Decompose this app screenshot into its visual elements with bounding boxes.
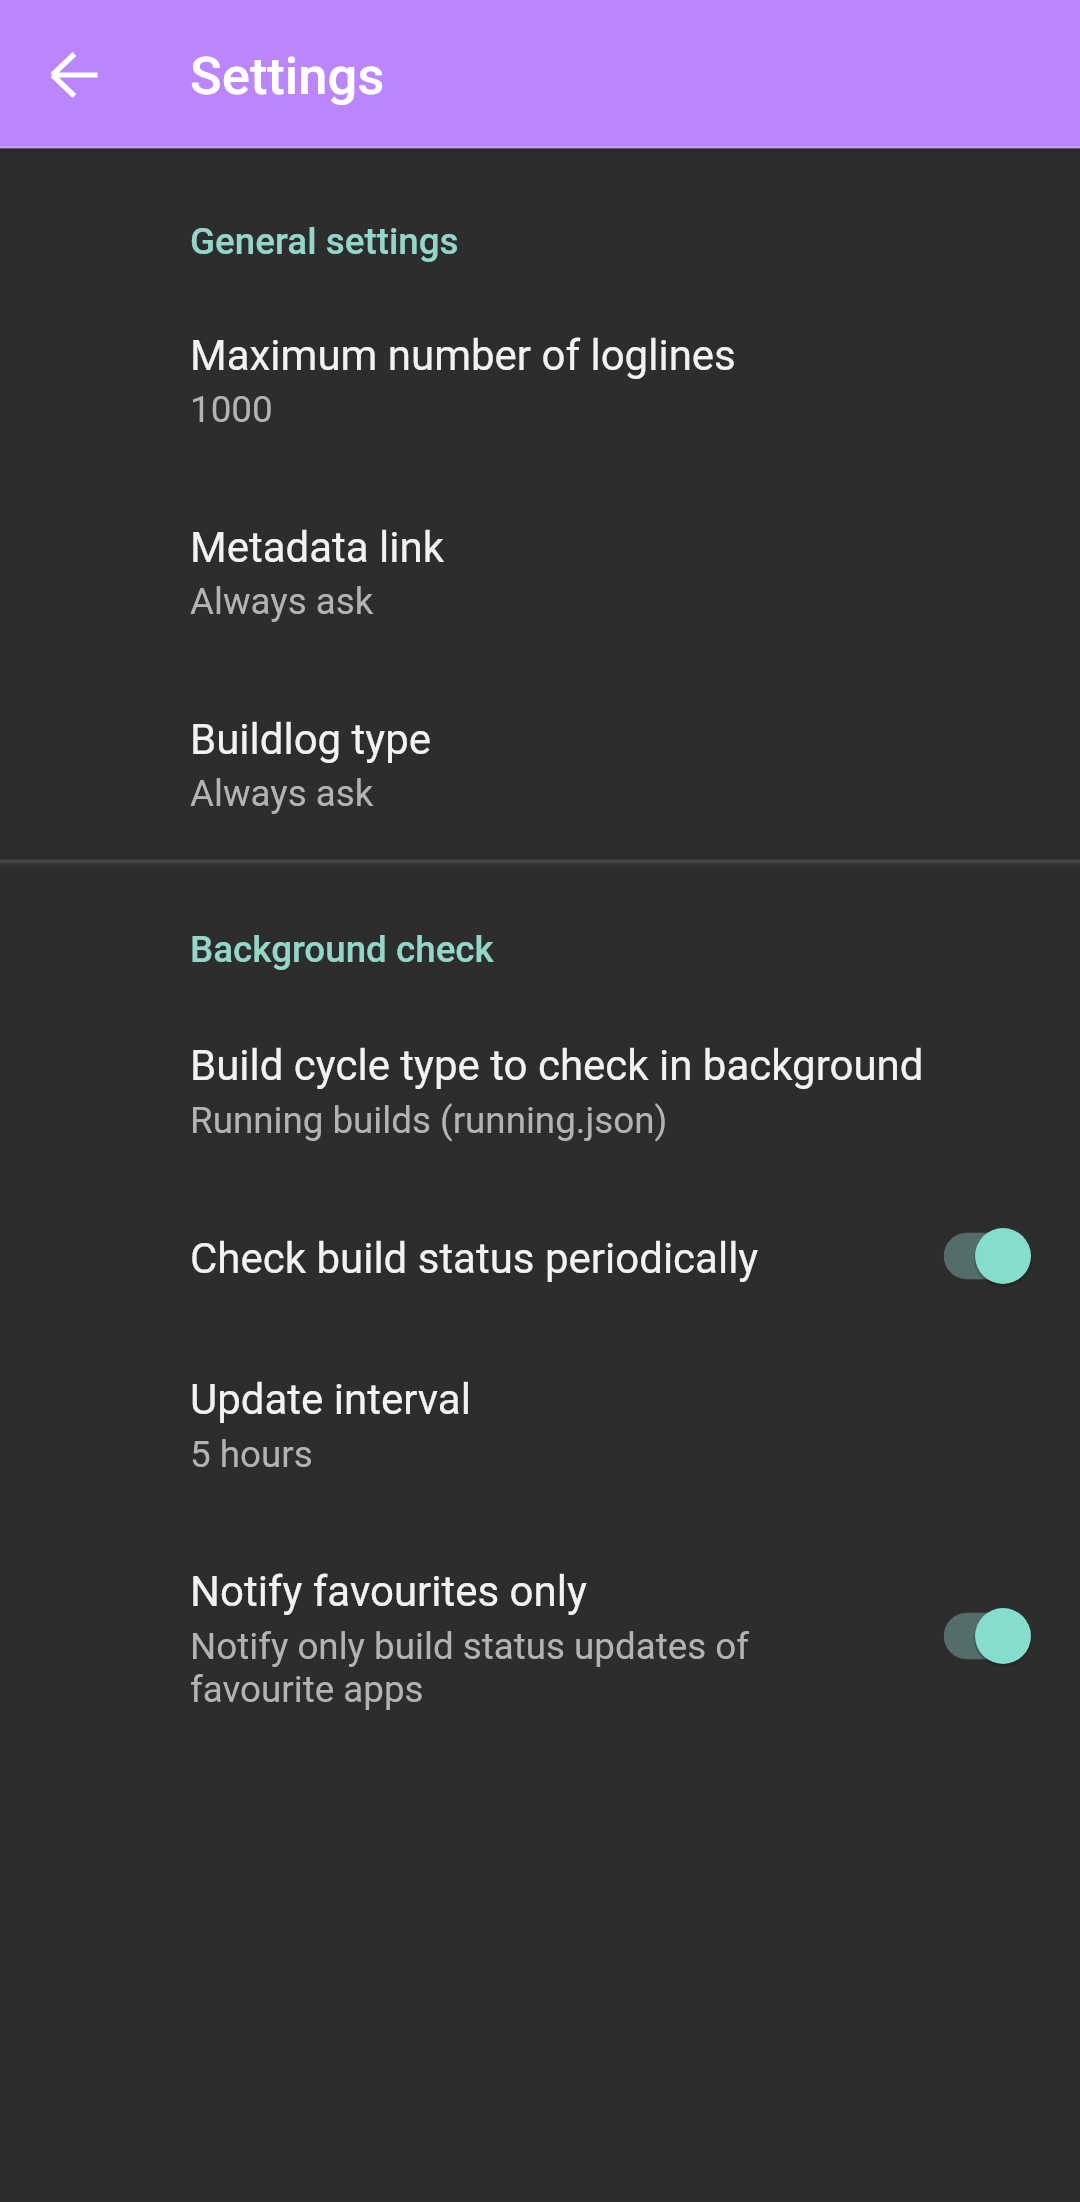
staticText: Update interval: [190, 1375, 471, 1424]
staticText: Settings: [190, 45, 385, 107]
staticText: Check build status periodically: [190, 1234, 759, 1283]
button[interactable]: Update interval: [0, 1344, 1080, 1514]
staticText: 5 hours: [190, 1433, 970, 1476]
button[interactable]: Maximum number of loglines: [0, 296, 1080, 466]
button[interactable]: Metadata link: [0, 489, 1080, 659]
staticText: Metadata link: [190, 523, 444, 572]
button[interactable]: Toggle setting: [940, 1193, 1066, 1319]
staticText: Running builds (running.json): [190, 1099, 970, 1142]
staticText: Notify only build status updates of favo…: [190, 1625, 790, 1711]
button[interactable]: Navigate up: [26, 27, 122, 123]
button[interactable]: Toggle setting: [940, 1573, 1066, 1699]
staticText: Always ask: [190, 580, 970, 623]
button[interactable]: Build cycle type to check in background: [0, 1004, 1080, 1174]
staticText: Notify favourites only: [190, 1567, 587, 1616]
staticText: Build cycle type to check in background: [190, 1041, 924, 1090]
staticText: Buildlog type: [190, 715, 432, 764]
staticText: Always ask: [190, 772, 970, 815]
button[interactable]: Notify favourites only: [0, 1532, 1080, 1745]
staticText: Maximum number of loglines: [190, 331, 736, 380]
staticText: 1000: [190, 388, 970, 431]
staticText: General settings: [190, 220, 459, 263]
button[interactable]: Buildlog type: [0, 680, 1080, 850]
staticText: Background check: [190, 928, 494, 971]
button[interactable]: Check build status periodically: [0, 1194, 1080, 1340]
